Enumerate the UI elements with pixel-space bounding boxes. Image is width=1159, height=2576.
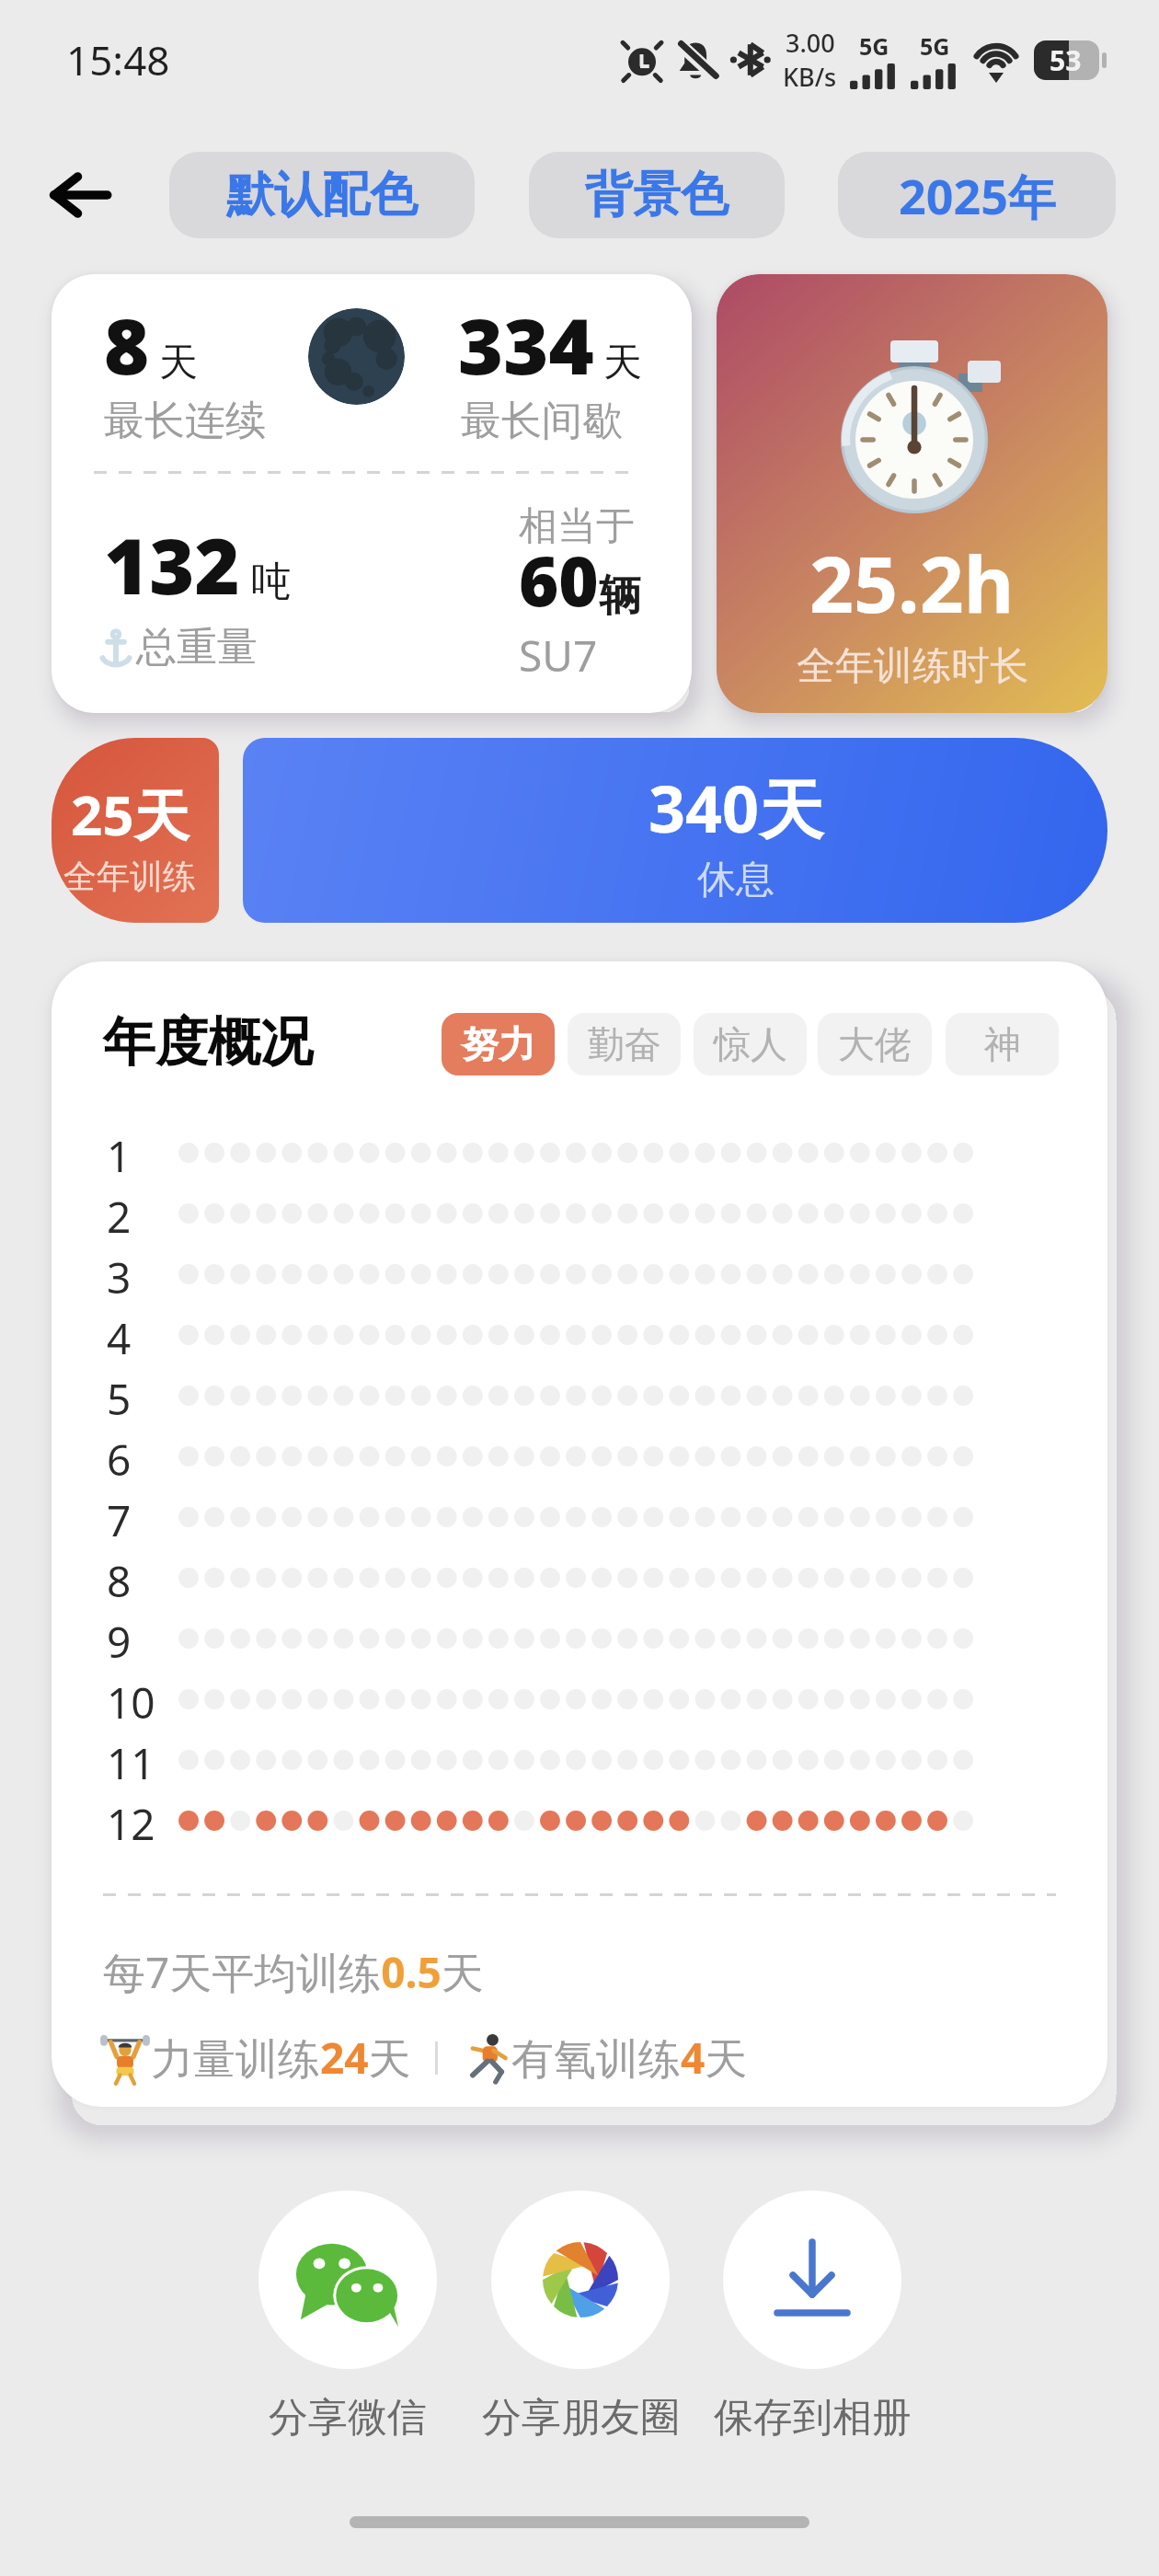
staticText: 神	[984, 1021, 1021, 1067]
staticText: 5G	[859, 30, 889, 62]
staticText: 分享微信	[269, 2393, 427, 2443]
button[interactable]: 努力	[442, 1013, 555, 1075]
button[interactable]: 惊人	[694, 1013, 807, 1075]
staticText: 8	[104, 292, 150, 397]
staticText: 3.00	[786, 26, 835, 60]
staticText: 1	[107, 1127, 132, 1179]
staticText: 惊人	[714, 1021, 787, 1067]
button[interactable]: 分享微信	[222, 2191, 474, 2443]
staticText: KB/s	[783, 60, 837, 94]
staticText: 保存到相册	[714, 2393, 912, 2443]
staticText: 25天	[71, 776, 189, 852]
staticText: 有氧训练4天	[511, 2029, 748, 2087]
staticText: 12	[107, 1795, 155, 1846]
staticText: 11	[107, 1734, 155, 1786]
button[interactable]: Back	[29, 147, 131, 243]
staticText: 25.2h	[809, 530, 1015, 635]
staticText: 全年训练时长	[797, 642, 1028, 691]
staticText: 10	[107, 1673, 155, 1725]
button[interactable]: 分享朋友圈	[454, 2191, 706, 2443]
staticText: 3	[107, 1248, 132, 1300]
staticText: 6	[107, 1431, 132, 1482]
staticText: 4	[107, 1309, 132, 1361]
button[interactable]: 340天	[243, 738, 1107, 923]
button[interactable]: 大佬	[818, 1013, 932, 1075]
button[interactable]: 25天	[52, 738, 219, 923]
staticText: 最长连续	[104, 396, 266, 446]
staticText: 相当于	[519, 502, 635, 551]
staticText: 7	[107, 1491, 132, 1543]
staticText: 最长间歇	[461, 396, 623, 446]
staticText: 53	[1050, 41, 1082, 79]
staticText: 2025年	[899, 163, 1056, 228]
staticText: 60	[519, 534, 599, 627]
staticText: 总重量	[136, 622, 258, 673]
staticText: 5	[107, 1370, 132, 1421]
staticText: 132	[104, 512, 240, 616]
staticText: 15:48	[66, 32, 170, 87]
staticText: 全年训练	[63, 856, 196, 897]
staticText: 大佬	[838, 1021, 912, 1067]
button[interactable]: 8	[52, 274, 692, 713]
staticText: SU7	[519, 627, 598, 684]
staticText: 9	[107, 1613, 132, 1664]
staticText: 力量训练24天	[151, 2029, 411, 2087]
button[interactable]: 2025年	[838, 152, 1116, 238]
staticText: 分享朋友圈	[482, 2393, 680, 2443]
staticText: 默认配色	[226, 165, 418, 225]
staticText: 8	[107, 1552, 132, 1604]
button[interactable]: 保存到相册	[686, 2191, 938, 2443]
staticText: 年度概况	[103, 1009, 313, 1075]
button[interactable]: 背景色	[529, 152, 785, 238]
staticText: 5G	[920, 30, 950, 62]
staticText: 辆	[599, 569, 641, 623]
staticText: 每7天平均训练0.5天	[103, 1943, 484, 2001]
staticText: 2	[107, 1188, 132, 1239]
staticText: 背景色	[585, 165, 729, 225]
staticText: 334	[458, 292, 594, 397]
staticText: 天	[159, 339, 198, 387]
staticText: 努力	[462, 1021, 535, 1067]
button[interactable]: 勤奋	[568, 1013, 681, 1075]
staticText: 340天	[648, 764, 824, 852]
staticText: 休息	[697, 856, 775, 904]
button[interactable]: 默认配色	[169, 152, 475, 238]
button[interactable]: 25.2h	[717, 274, 1107, 713]
staticText: 勤奋	[588, 1021, 661, 1067]
staticText: 天	[603, 339, 642, 387]
button[interactable]: 神	[946, 1013, 1059, 1075]
staticText: 吨	[251, 557, 292, 607]
